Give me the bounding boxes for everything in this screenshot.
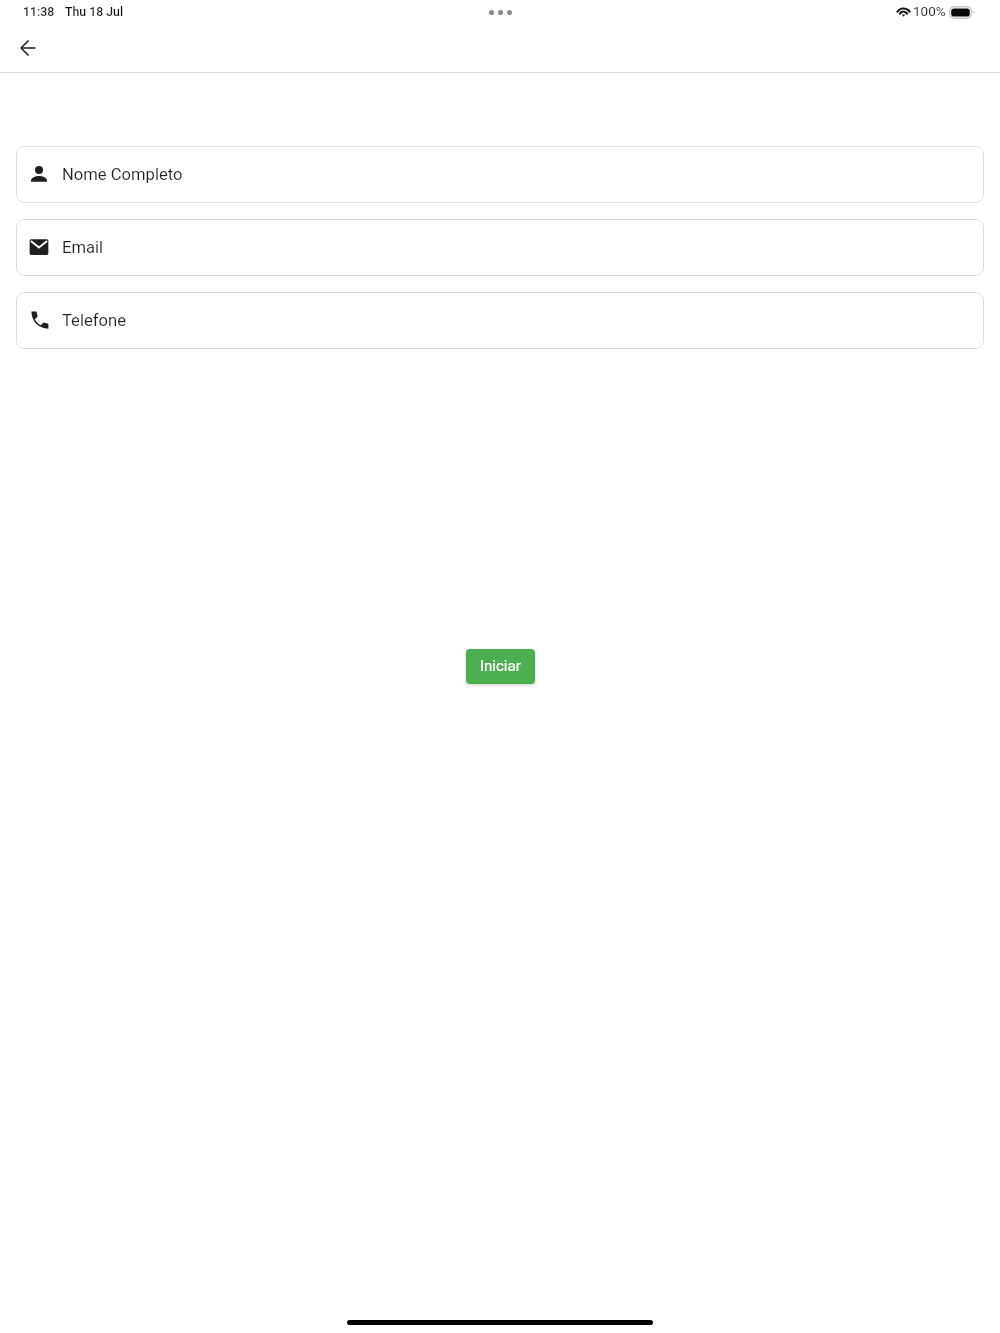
staticText: Email [62, 238, 104, 257]
staticText: 100% [913, 3, 946, 19]
button[interactable]: Email [16, 219, 984, 276]
button[interactable]: Telefone [16, 292, 984, 349]
staticText: Thu 18 Jul [65, 5, 124, 19]
staticText: Iniciar [480, 657, 521, 675]
button[interactable]: Back [8, 28, 47, 67]
staticText: Nome Completo [62, 165, 183, 184]
button[interactable]: Iniciar [466, 649, 535, 684]
staticText: Telefone [62, 311, 126, 330]
staticText: 11:38 [23, 5, 55, 19]
button[interactable]: Nome Completo [16, 146, 984, 203]
